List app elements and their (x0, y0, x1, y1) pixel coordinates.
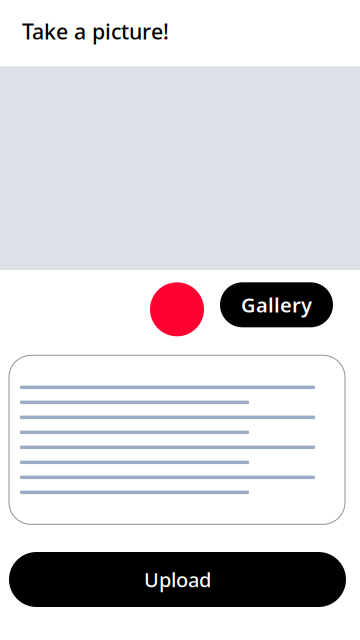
staticText: Gallery (241, 292, 312, 318)
button[interactable]: Upload (9, 552, 346, 607)
button[interactable]: Take photo (150, 282, 204, 336)
staticText: Upload (144, 566, 211, 593)
staticText: Take a picture! (22, 17, 169, 45)
button[interactable]: Gallery (220, 282, 333, 327)
